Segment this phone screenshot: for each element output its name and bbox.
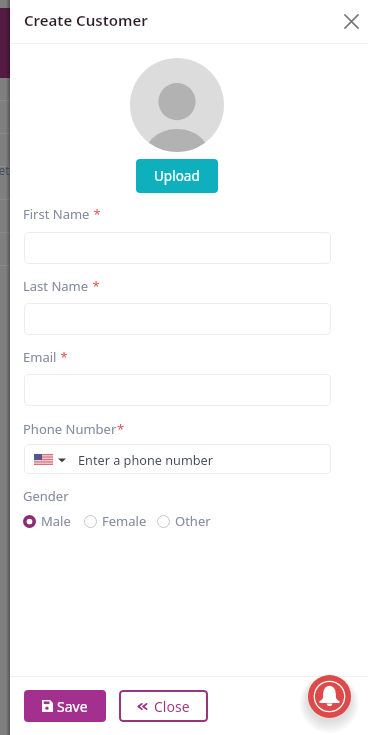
button[interactable]: Female: [84, 512, 147, 530]
staticText: Phone Number: [23, 420, 117, 438]
staticText: Create Customer: [24, 10, 148, 30]
staticText: Email: [23, 348, 57, 366]
staticText: *: [117, 420, 125, 438]
staticText: First Name: [23, 205, 90, 223]
button[interactable]: Male: [23, 512, 71, 530]
button[interactable]: [24, 232, 331, 264]
button[interactable]: [24, 303, 331, 335]
button[interactable]: Close: [119, 690, 208, 722]
staticText: Gender: [23, 487, 69, 505]
button[interactable]: Save: [24, 690, 106, 722]
staticText: Male: [41, 512, 71, 530]
staticText: *: [90, 205, 101, 223]
button[interactable]: Upload: [136, 159, 218, 193]
staticText: Save: [57, 697, 88, 716]
button[interactable]: Other: [157, 512, 211, 530]
staticText: Upload: [154, 167, 200, 185]
staticText: *: [57, 348, 68, 366]
staticText: Other: [175, 512, 211, 530]
button[interactable]: Enter a phone number: [24, 444, 331, 474]
staticText: Female: [102, 512, 147, 530]
button[interactable]: Notifications: [308, 675, 351, 718]
button[interactable]: Close dialog: [335, 5, 367, 37]
button[interactable]: [24, 374, 331, 406]
staticText: Enter a phone number: [78, 451, 213, 468]
staticText: Last Name: [23, 277, 89, 295]
staticText: Close: [154, 697, 190, 716]
staticText: *: [89, 277, 100, 295]
staticText: Completed: [0, 162, 24, 178]
